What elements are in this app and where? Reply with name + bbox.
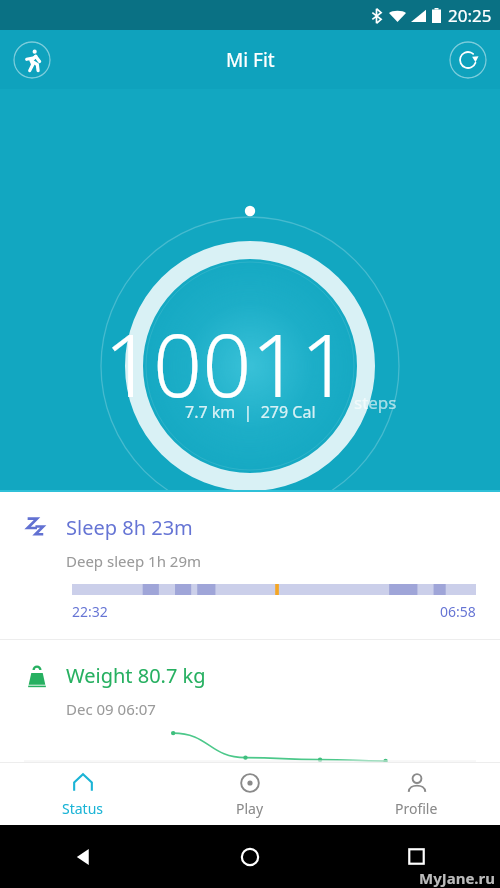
staticText: 7.7 km | 279 Cal (185, 401, 316, 423)
button[interactable]: Play (166, 763, 333, 825)
button[interactable]: Back (0, 825, 166, 888)
staticText: steps (354, 391, 397, 414)
staticText: Dec 09 06:07 (66, 699, 156, 719)
button[interactable]: Status (0, 763, 166, 825)
staticText: Play (236, 799, 264, 818)
staticText: 10011 (104, 305, 350, 422)
button[interactable]: Profile (333, 763, 500, 825)
staticText: Weight 80.7 kg (66, 662, 206, 689)
button[interactable]: Sleep 8h 23m (0, 492, 500, 639)
staticText: 06:58 (440, 602, 476, 621)
staticText: Mi Fit (226, 47, 275, 73)
staticText: Deep sleep 1h 29m (66, 551, 202, 571)
staticText: Profile (395, 799, 438, 818)
button[interactable]: Recents (333, 825, 500, 888)
button[interactable]: Weight 80.7 kg (0, 640, 500, 761)
staticText: Status (62, 799, 104, 818)
button[interactable]: Home (166, 825, 333, 888)
button[interactable]: Start workout (13, 41, 51, 79)
staticText: 20:25 (448, 4, 492, 27)
staticText: MyJane.ru (419, 868, 496, 888)
staticText: Sleep 8h 23m (66, 514, 193, 541)
button[interactable]: 10011 (0, 89, 500, 492)
staticText: 22:32 (72, 602, 108, 621)
button[interactable]: Sync (449, 41, 487, 79)
